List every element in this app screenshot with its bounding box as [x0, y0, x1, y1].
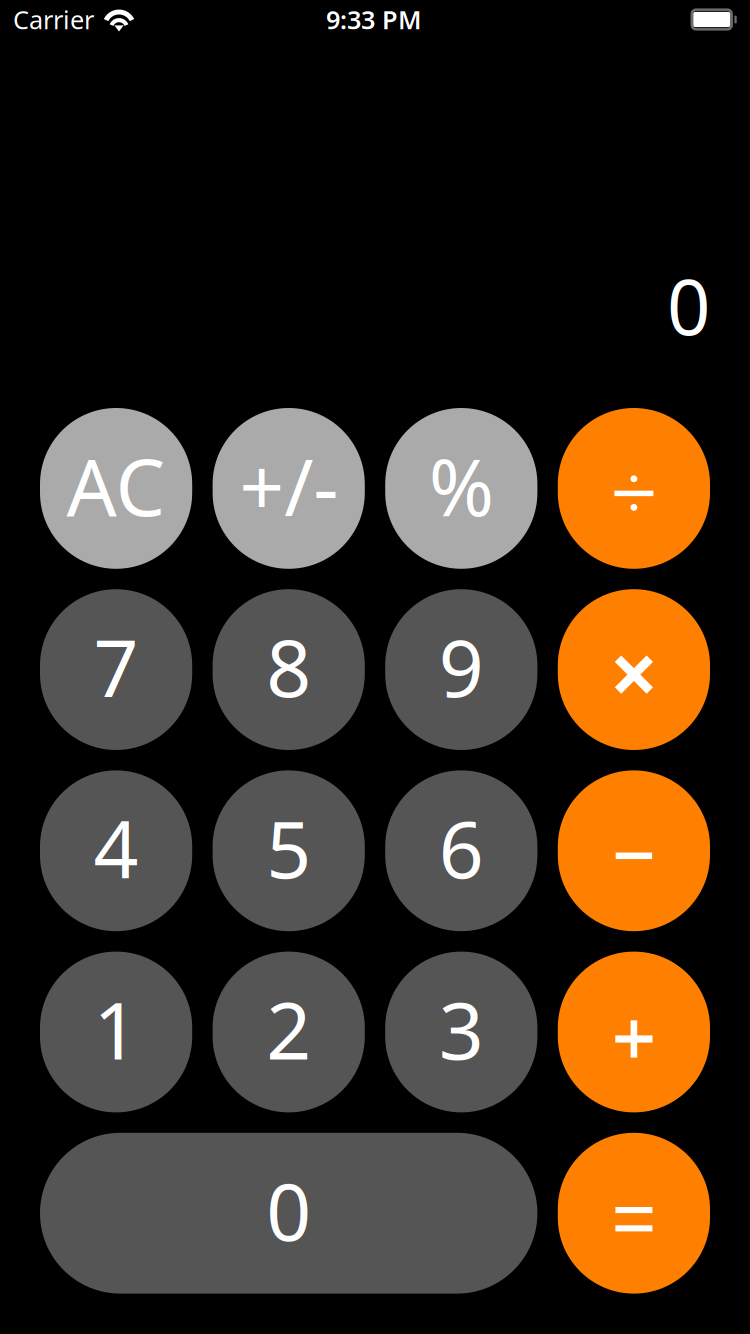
button[interactable]: Divide — [558, 408, 710, 569]
button[interactable]: Equals — [558, 1133, 710, 1294]
button[interactable]: 0 — [40, 1133, 537, 1294]
button[interactable]: 7 — [40, 589, 192, 750]
button[interactable]: Plus — [558, 952, 710, 1112]
button[interactable]: Minus — [558, 770, 710, 931]
staticText: 9:33 PM — [326, 3, 422, 36]
button[interactable]: 8 — [213, 589, 365, 750]
staticText: 8 — [266, 614, 311, 719]
button[interactable]: Percent — [385, 408, 537, 569]
staticText: Carrier — [13, 3, 94, 36]
staticText: AC — [67, 433, 166, 538]
staticText: 5 — [266, 796, 311, 900]
staticText: 0 — [266, 1158, 311, 1262]
staticText: % — [429, 433, 494, 538]
staticText: 6 — [439, 796, 484, 900]
button[interactable]: 3 — [385, 952, 537, 1112]
button[interactable]: 9 — [385, 589, 537, 750]
button[interactable]: 6 — [385, 770, 537, 931]
button[interactable]: Multiply — [558, 589, 710, 750]
staticText: 1 — [94, 977, 139, 1081]
staticText: 7 — [94, 614, 139, 719]
button[interactable]: All Clear — [40, 408, 192, 569]
button[interactable]: 1 — [40, 952, 192, 1112]
button[interactable]: 5 — [213, 770, 365, 931]
button[interactable]: 2 — [213, 952, 365, 1112]
staticText: 9 — [439, 614, 484, 719]
button[interactable]: 4 — [40, 770, 192, 931]
staticText: 0 — [667, 255, 710, 356]
staticText: 2 — [266, 977, 311, 1081]
staticText: 4 — [94, 796, 139, 900]
staticText: +/- — [239, 433, 338, 538]
button[interactable]: Plus Minus — [213, 408, 365, 569]
staticText: 3 — [439, 977, 484, 1081]
